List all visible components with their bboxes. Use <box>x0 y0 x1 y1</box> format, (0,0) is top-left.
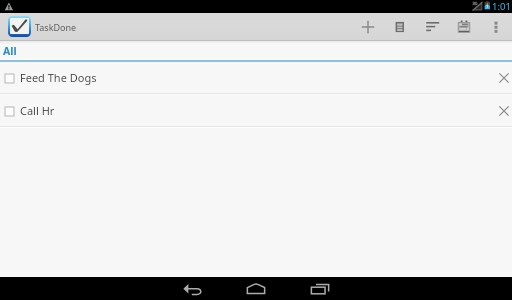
button[interactable]: Toggle Call Hr <box>4 106 14 116</box>
button[interactable]: Home <box>224 277 288 300</box>
button[interactable]: Delete Feed The Dogs <box>496 70 512 86</box>
staticText: Feed The Dogs <box>20 70 97 85</box>
button[interactable]: Calendar <box>448 13 480 40</box>
button[interactable]: Recent apps <box>288 277 352 300</box>
staticText: 1:01 <box>492 0 511 13</box>
button[interactable]: Toggle Call Hr <box>0 95 512 126</box>
button[interactable]: All <box>0 41 512 60</box>
button[interactable]: Add task <box>352 13 384 40</box>
button[interactable]: Delete Call Hr <box>496 103 512 119</box>
button[interactable]: More options <box>480 13 512 40</box>
staticText: All <box>3 44 17 58</box>
button[interactable]: Toggle Feed The Dogs <box>0 62 512 93</box>
button[interactable]: View list <box>384 13 416 40</box>
button[interactable]: Back <box>160 277 224 300</box>
staticText: Call Hr <box>20 103 55 118</box>
button[interactable]: Toggle Feed The Dogs <box>4 73 14 83</box>
staticText: TaskDone <box>35 21 77 33</box>
button[interactable]: TaskDone <box>0 16 83 37</box>
button[interactable]: Sort <box>416 13 448 40</box>
